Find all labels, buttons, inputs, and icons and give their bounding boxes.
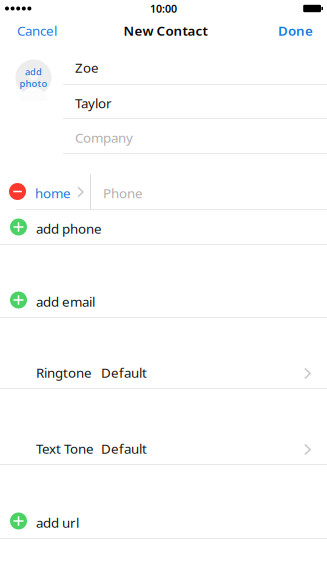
staticText: Phone xyxy=(103,184,143,202)
staticText: Cancel xyxy=(17,22,57,39)
staticText: Default xyxy=(101,440,147,457)
button[interactable]: add url xyxy=(0,504,327,538)
staticText: Company xyxy=(75,129,133,146)
button[interactable]: Cancel xyxy=(0,17,74,44)
button[interactable]: Company xyxy=(0,119,327,153)
button[interactable]: Text Tone xyxy=(0,430,327,464)
button[interactable]: home xyxy=(0,174,327,209)
staticText: home xyxy=(35,184,71,202)
button[interactable]: add email xyxy=(0,283,327,317)
button[interactable]: Ringtone xyxy=(0,354,327,388)
staticText: Zoe xyxy=(75,59,99,76)
staticText: photo xyxy=(19,77,47,90)
staticText: 10:00 xyxy=(150,1,177,16)
staticText: add xyxy=(25,65,42,78)
button[interactable]: Zoe xyxy=(0,48,327,84)
staticText: Default xyxy=(101,364,147,381)
staticText: add url xyxy=(36,514,79,531)
staticText: Text Tone xyxy=(36,440,94,457)
staticText: add phone xyxy=(36,220,102,237)
staticText: Done xyxy=(278,22,313,39)
button[interactable]: add phone xyxy=(0,210,327,244)
staticText: Taylor xyxy=(75,94,112,112)
staticText: New Contact xyxy=(123,22,207,39)
staticText: add email xyxy=(36,293,95,310)
staticText: Ringtone xyxy=(36,364,92,381)
button[interactable]: Done xyxy=(264,17,327,44)
button[interactable]: Taylor xyxy=(0,85,327,118)
